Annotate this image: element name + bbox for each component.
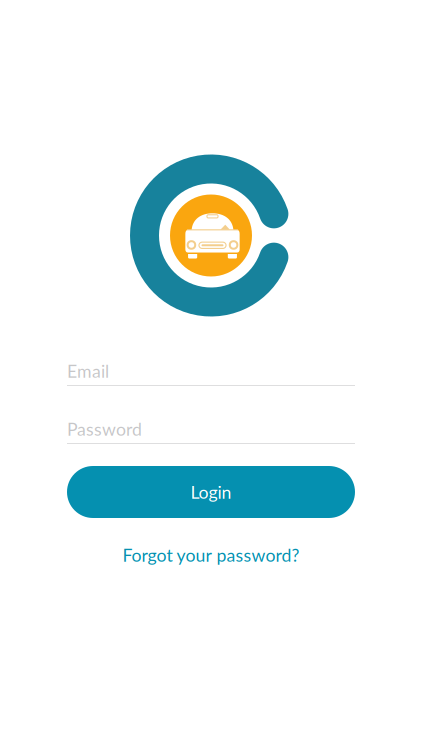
staticText: Forgot your password? — [122, 544, 299, 566]
staticText: Password — [67, 418, 142, 440]
staticText: Login — [190, 481, 231, 503]
staticText: Email — [67, 360, 109, 382]
button[interactable]: Login — [67, 466, 355, 518]
button[interactable]: Forgot your password? — [67, 543, 355, 567]
